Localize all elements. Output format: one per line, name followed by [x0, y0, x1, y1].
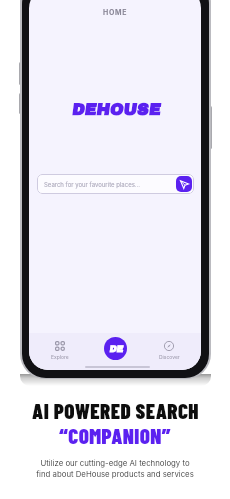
- button[interactable]: Discover: [147, 340, 191, 361]
- staticText: Utilize our cutting-edge AI technology t…: [36, 458, 194, 479]
- staticText: “COMPANION”: [59, 423, 171, 448]
- staticText: AI POWERED SEARCH: [32, 398, 199, 423]
- staticText: Explore: [51, 354, 69, 360]
- staticText: Search for your favourite places...: [44, 181, 141, 188]
- button[interactable]: Explore: [38, 340, 82, 361]
- staticText: DE: [109, 344, 123, 354]
- staticText: HOME: [103, 8, 128, 16]
- button[interactable]: DE: [104, 337, 127, 360]
- staticText: Discover: [159, 354, 180, 360]
- button[interactable]: Search: [176, 176, 192, 192]
- staticText: DEHOUSE: [71, 101, 160, 118]
- button[interactable]: Search for your favourite places...: [37, 174, 194, 194]
